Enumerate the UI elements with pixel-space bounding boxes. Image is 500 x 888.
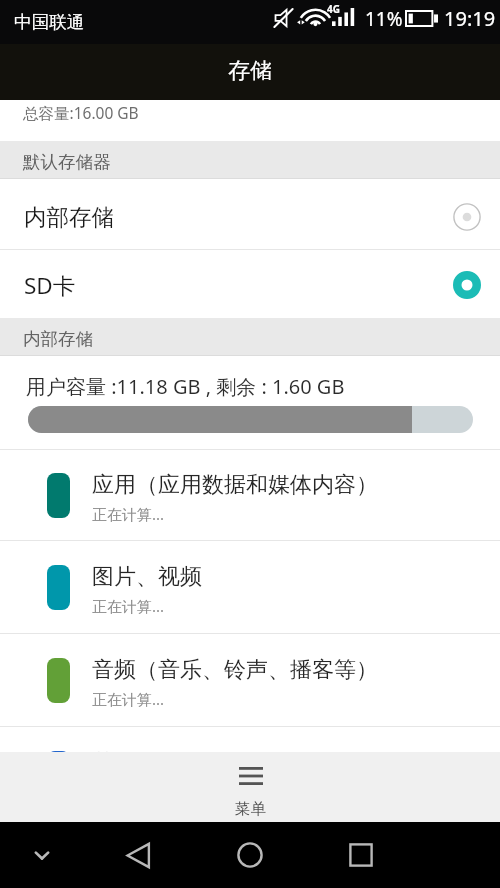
staticText: 19:19 — [444, 5, 496, 32]
staticText: 11% — [365, 6, 403, 32]
button[interactable]: 音频（音乐、铃声、播客等） — [0, 634, 500, 726]
staticText: 4G — [327, 2, 340, 16]
staticText: 内部存储 — [23, 328, 93, 350]
button[interactable]: Back — [104, 822, 174, 888]
staticText: SD卡 — [24, 270, 76, 301]
staticText: 用户容量 :11.18 GB , 剩余 : 1.60 GB — [26, 373, 345, 400]
staticText: 音频（音乐、铃声、播客等） — [92, 656, 378, 684]
button[interactable]: SD卡 — [0, 250, 500, 318]
staticText: 正在计算... — [92, 596, 165, 616]
button[interactable]: 图片、视频 — [0, 541, 500, 633]
button[interactable]: 其他 — [0, 727, 500, 752]
staticText: 应用（应用数据和媒体内容） — [92, 471, 378, 499]
staticText: 中国联通 — [14, 11, 84, 33]
staticText: 总容量:16.00 GB — [23, 102, 139, 123]
button[interactable]: 内部存储 — [0, 179, 500, 249]
staticText: 菜单 — [235, 799, 266, 819]
staticText: 正在计算... — [92, 504, 165, 524]
button[interactable]: Home — [215, 822, 285, 888]
button[interactable]: 应用（应用数据和媒体内容） — [0, 450, 500, 540]
staticText: 图片、视频 — [92, 563, 202, 591]
staticText: 内部存储 — [24, 203, 114, 231]
staticText: 正在计算... — [92, 689, 165, 709]
button[interactable]: Recents — [326, 822, 396, 888]
button[interactable]: Hide keyboard — [0, 822, 84, 888]
staticText: 默认存储器 — [23, 151, 111, 173]
button[interactable]: 菜单 — [0, 752, 500, 822]
staticText: 存储 — [228, 57, 272, 85]
